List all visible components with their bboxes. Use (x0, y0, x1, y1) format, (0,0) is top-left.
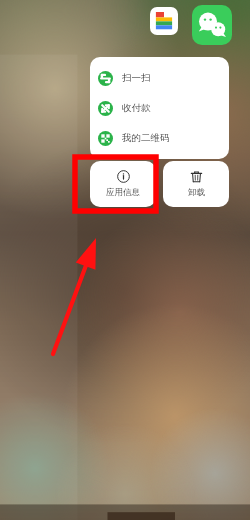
staticText: 收付款 (122, 102, 151, 114)
button[interactable]: 扫一扫 (90, 63, 229, 93)
button[interactable]: 卸载 (163, 161, 229, 207)
button[interactable]: 我的二维码 (90, 123, 229, 153)
button[interactable]: App (150, 7, 178, 35)
button[interactable]: 应用信息 (90, 161, 156, 207)
button[interactable]: 收付款 (90, 93, 229, 123)
staticText: 应用信息 (106, 187, 140, 198)
button[interactable]: WeChat (192, 5, 232, 45)
staticText: 扫一扫 (122, 72, 151, 84)
staticText: 卸载 (188, 187, 205, 198)
staticText: 我的二维码 (122, 132, 170, 144)
